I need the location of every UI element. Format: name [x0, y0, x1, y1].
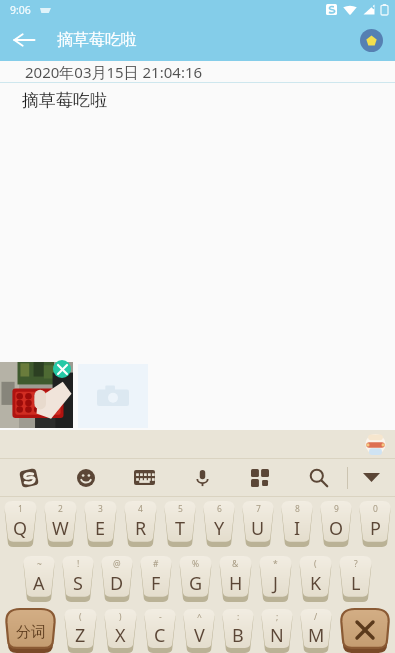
staticText: B — [232, 623, 244, 648]
staticText: / — [314, 611, 318, 623]
staticText: 9:06 — [10, 3, 31, 17]
staticText: O — [329, 516, 344, 541]
button[interactable]: P — [358, 501, 392, 547]
button[interactable]: I — [280, 501, 314, 547]
staticText: P — [370, 516, 381, 541]
staticText: 6 — [217, 503, 222, 515]
button[interactable]: Remove photo — [53, 360, 71, 378]
staticText: 1 — [18, 503, 23, 515]
staticText: X — [115, 623, 126, 648]
button[interactable]: K — [298, 556, 333, 602]
staticText: 摘草莓吃啦 — [57, 30, 137, 50]
staticText: L — [351, 571, 361, 596]
button[interactable]: Keyboard layout — [115, 459, 173, 496]
staticText: ^ — [197, 611, 202, 623]
button[interactable]: O — [319, 501, 353, 547]
staticText: R — [135, 516, 147, 541]
staticText: ~ — [37, 558, 42, 570]
button[interactable]: H — [218, 556, 253, 602]
button[interactable]: B — [221, 609, 255, 653]
staticText: M — [308, 623, 325, 648]
button[interactable]: N — [260, 609, 294, 653]
staticText: S — [73, 571, 83, 596]
button[interactable]: W — [43, 501, 78, 547]
button[interactable]: Menu — [360, 29, 383, 52]
staticText: 分词 — [16, 623, 46, 642]
button[interactable]: E — [83, 501, 118, 547]
staticText: 8 — [295, 503, 300, 515]
staticText: 4 — [138, 503, 143, 515]
staticText: : — [237, 611, 240, 623]
button[interactable]: Voice input — [173, 459, 231, 496]
staticText: ( — [79, 611, 82, 623]
button[interactable]: T — [163, 501, 197, 547]
button[interactable]: More tools — [231, 459, 289, 496]
button[interactable]: M — [299, 609, 333, 653]
staticText: - — [159, 611, 162, 623]
staticText: T — [175, 516, 186, 541]
button[interactable]: L — [338, 556, 373, 602]
button[interactable]: R — [123, 501, 158, 547]
button[interactable]: Search — [289, 459, 347, 496]
staticText: % — [192, 558, 200, 570]
button[interactable]: Q — [3, 501, 38, 547]
button[interactable]: Sogou input settings — [0, 459, 57, 496]
staticText: W — [52, 516, 69, 541]
button[interactable]: Hide keyboard — [348, 459, 395, 496]
button[interactable]: D — [100, 556, 134, 602]
staticText: C — [154, 623, 166, 648]
staticText: Q — [13, 516, 28, 541]
staticText: * — [273, 558, 278, 570]
staticText: 9 — [334, 503, 339, 515]
button[interactable]: J — [258, 556, 293, 602]
staticText: 2 — [58, 503, 63, 515]
staticText: ! — [77, 558, 80, 570]
staticText: V — [194, 623, 205, 648]
staticText: Y — [214, 516, 225, 541]
staticText: 3 — [98, 503, 103, 515]
staticText: & — [232, 558, 239, 570]
staticText: ; — [276, 611, 279, 623]
button[interactable]: F — [139, 556, 173, 602]
staticText: I — [294, 516, 301, 541]
button[interactable]: 分词 — [3, 609, 58, 653]
staticText: K — [310, 571, 322, 596]
staticText: 7 — [256, 503, 261, 515]
staticText: 摘草莓吃啦 — [22, 90, 107, 111]
staticText: J — [273, 571, 278, 596]
staticText: U — [251, 516, 265, 541]
staticText: ( — [314, 558, 317, 570]
button[interactable]: X — [103, 609, 138, 653]
staticText: H — [229, 571, 243, 596]
staticText: A — [33, 571, 45, 596]
button[interactable]: Emoji — [57, 459, 115, 496]
staticText: ? — [354, 558, 358, 570]
staticText: N — [270, 623, 284, 648]
staticText: E — [95, 516, 106, 541]
button[interactable]: S — [61, 556, 95, 602]
staticText: @ — [113, 558, 121, 570]
button[interactable]: Back — [4, 20, 44, 60]
staticText: 5 — [178, 503, 183, 515]
button[interactable]: Y — [202, 501, 236, 547]
staticText: D — [110, 571, 124, 596]
button[interactable]: A — [22, 556, 56, 602]
button[interactable]: G — [178, 556, 213, 602]
staticText: ) — [119, 611, 122, 623]
button[interactable]: Sticker — [364, 433, 387, 456]
button[interactable]: C — [143, 609, 177, 653]
staticText: 2020年03月15日 21:04:16 — [25, 62, 203, 82]
button[interactable]: Add photo — [78, 364, 148, 428]
button[interactable]: U — [241, 501, 275, 547]
button[interactable]: Z — [63, 609, 98, 653]
button[interactable]: V — [182, 609, 216, 653]
staticText: 0 — [373, 503, 378, 515]
staticText: Z — [75, 623, 86, 648]
button[interactable]: Photo — [0, 362, 73, 428]
staticText: F — [151, 571, 161, 596]
staticText: G — [189, 571, 203, 596]
staticText: # — [153, 558, 159, 570]
button[interactable]: Delete — [338, 609, 392, 653]
